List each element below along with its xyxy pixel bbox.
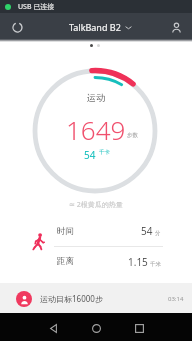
staticText: TalkBand B2 — [69, 21, 121, 33]
staticText: USB 已连接 — [18, 2, 55, 12]
button[interactable]: 时间 — [57, 216, 192, 246]
staticText: 运动 — [87, 92, 105, 103]
button[interactable]: TalkBand B2 — [65, 21, 136, 33]
button[interactable]: 运动目标16000步 — [0, 283, 192, 314]
staticText: 步数 — [127, 132, 138, 139]
staticText: 距离 — [57, 256, 74, 267]
button[interactable]: Home — [85, 317, 107, 339]
staticText: 时间 — [57, 226, 74, 237]
staticText: ≈ 2根黄瓜的热量 — [69, 200, 123, 210]
staticText: 1649 — [66, 112, 126, 147]
button[interactable]: Recents — [128, 317, 150, 339]
button[interactable]: 距离 — [57, 247, 192, 276]
staticText: 运动目标16000步 — [40, 293, 103, 304]
button[interactable]: Refresh — [7, 17, 27, 37]
staticText: 分 — [155, 230, 161, 237]
staticText: 1.15 — [128, 255, 148, 269]
staticText: 54 — [84, 148, 96, 162]
staticText: 03:14 — [168, 295, 184, 303]
staticText: 54 — [141, 224, 153, 238]
staticText: 千米 — [150, 261, 161, 268]
staticText: 千卡 — [99, 149, 110, 156]
button[interactable]: Profile — [166, 17, 186, 37]
button[interactable]: Back — [42, 317, 64, 339]
